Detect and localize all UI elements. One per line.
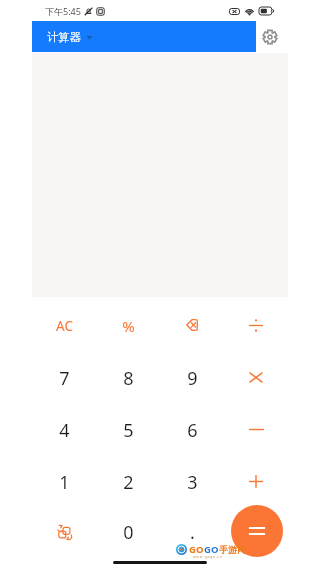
button[interactable]: Settings (261, 28, 279, 46)
button[interactable]: 1 (32, 455, 96, 507)
staticText: 8 (123, 366, 134, 391)
staticText: 0 (123, 520, 134, 545)
button[interactable]: Minus (224, 403, 288, 455)
staticText: 7 (59, 366, 70, 391)
staticText: 下午5:45 (45, 5, 81, 17)
button[interactable]: 7 (32, 351, 96, 403)
button[interactable]: 8 (96, 351, 160, 403)
button[interactable]: 6 (160, 403, 224, 455)
button[interactable]: 0 (96, 506, 160, 558)
button[interactable]: 9 (160, 351, 224, 403)
button[interactable]: Backspace (160, 299, 224, 351)
button[interactable]: . (160, 506, 224, 558)
button[interactable]: AC (32, 299, 96, 351)
button[interactable]: % (96, 299, 160, 351)
staticText: 手游网 (219, 544, 246, 555)
button[interactable]: 计算器 (32, 21, 256, 52)
staticText: % (122, 316, 135, 336)
staticText: 4 (59, 418, 70, 443)
staticText: 2 (123, 470, 134, 495)
button[interactable]: Plus (224, 455, 288, 507)
staticText: AC (56, 317, 73, 335)
staticText: GO (189, 543, 204, 556)
button[interactable]: Equals (231, 505, 283, 557)
button[interactable]: 4 (32, 403, 96, 455)
staticText: 1 (59, 470, 70, 495)
staticText: w w w . g o g o . c n (193, 555, 222, 559)
button[interactable]: Multiply (224, 351, 288, 403)
button[interactable]: Divide (224, 299, 288, 351)
staticText: 计算器 (47, 30, 81, 44)
staticText: . (190, 520, 195, 545)
button[interactable]: 2 (96, 455, 160, 507)
button[interactable]: 3 (160, 455, 224, 507)
button[interactable]: 5 (96, 403, 160, 455)
staticText: 9 (187, 366, 198, 391)
staticText: 5 (123, 418, 134, 443)
button[interactable]: Unit converter (32, 506, 96, 558)
staticText: 6 (187, 418, 198, 443)
staticText: 3 (187, 470, 198, 495)
staticText: GO (204, 543, 219, 556)
